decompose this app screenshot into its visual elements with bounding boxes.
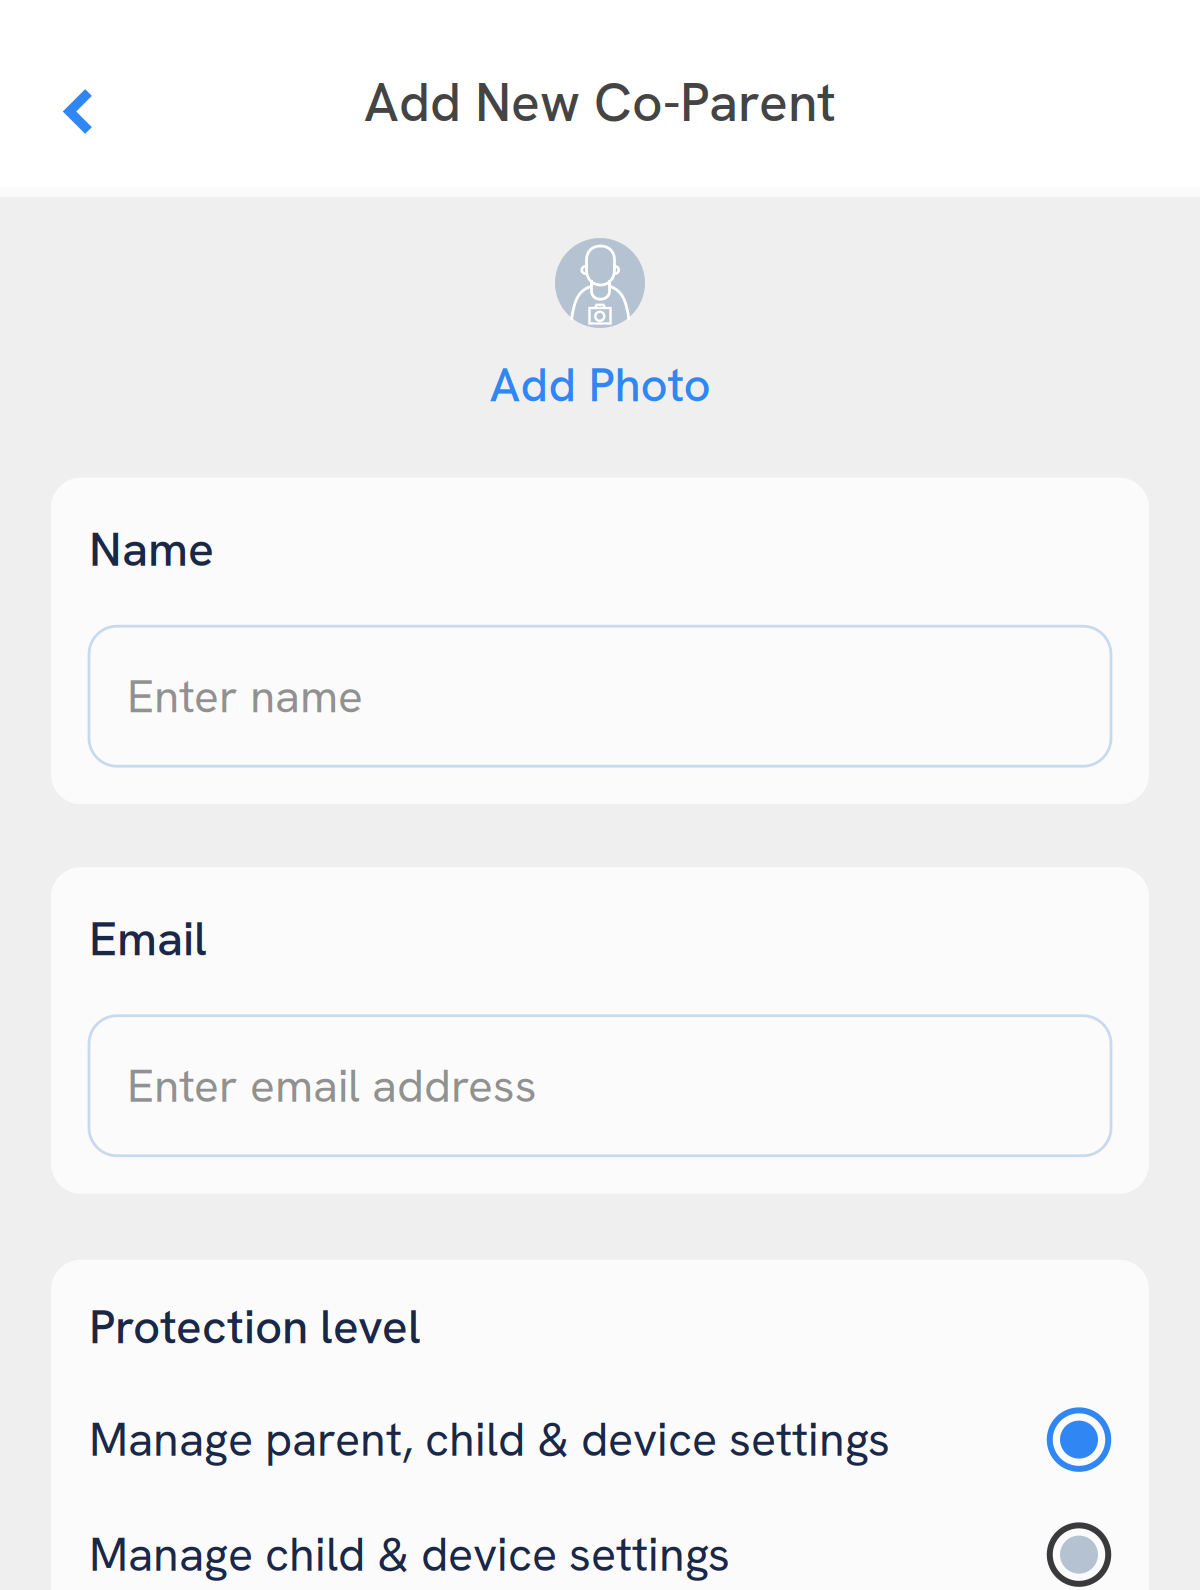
- button[interactable]: Manage parent, child & device settings: [89, 1402, 1111, 1478]
- staticText: Add Photo: [489, 354, 710, 416]
- staticText: Add New Co-Parent: [364, 68, 836, 137]
- staticText: Name: [89, 518, 214, 580]
- staticText: Manage child & device settings: [89, 1524, 730, 1585]
- button[interactable]: Enter email address: [89, 1016, 1111, 1156]
- button[interactable]: Manage child & device settings: [89, 1517, 1111, 1590]
- staticText: Protection level: [89, 1296, 421, 1358]
- button[interactable]: Back: [39, 64, 115, 140]
- staticText: Manage parent, child & device settings: [89, 1409, 890, 1470]
- staticText: Email: [89, 907, 207, 970]
- staticText: Enter name: [127, 666, 363, 726]
- staticText: Enter email address: [127, 1056, 537, 1116]
- button[interactable]: Add Photo: [485, 238, 715, 416]
- button[interactable]: Enter name: [89, 626, 1111, 766]
